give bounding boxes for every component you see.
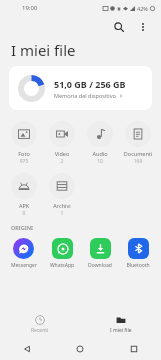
- button[interactable]: Messenger: [4, 236, 43, 271]
- button[interactable]: Video: [43, 118, 81, 168]
- button[interactable]: Recenti: [107, 338, 161, 360]
- staticText: Memoria del dispositivo: [54, 92, 116, 99]
- staticText: Bluetooth: [121, 262, 155, 269]
- staticText: 2: [47, 158, 77, 165]
- staticText: I miei file: [110, 327, 132, 334]
- staticText: Audio: [85, 150, 115, 157]
- staticText: I miei file: [11, 40, 76, 60]
- staticText: 19:00: [22, 4, 38, 12]
- button[interactable]: Foto: [4, 118, 43, 168]
- button[interactable]: Download: [81, 236, 119, 271]
- button[interactable]: Bluetooth: [119, 236, 157, 271]
- staticText: Recenti: [31, 327, 49, 334]
- staticText: 0: [9, 210, 39, 217]
- staticText: 1: [47, 210, 77, 217]
- button[interactable]: APK: [4, 170, 43, 220]
- staticText: 42%: [137, 5, 148, 12]
- button[interactable]: Altre opzioni: [133, 17, 153, 37]
- staticText: Download: [83, 262, 117, 269]
- button[interactable]: I miei file: [80, 310, 161, 338]
- staticText: APK: [9, 202, 39, 209]
- button[interactable]: Recenti: [0, 310, 80, 338]
- staticText: Documenti: [123, 150, 153, 157]
- staticText: 10: [85, 158, 115, 165]
- staticText: ORIGINI: [11, 224, 33, 231]
- staticText: 51,0 GB / 256 GB: [54, 78, 126, 90]
- staticText: Archivi: [47, 202, 77, 209]
- button[interactable]: Audio: [81, 118, 119, 168]
- staticText: WhatsApp: [45, 262, 79, 269]
- staticText: Foto: [9, 150, 39, 157]
- button[interactable]: 51,0 GB / 256 GB: [9, 66, 152, 110]
- staticText: Video: [47, 150, 77, 157]
- staticText: 169: [123, 158, 153, 165]
- button[interactable]: Documenti: [119, 118, 157, 168]
- button[interactable]: Archivi: [43, 170, 81, 220]
- staticText: 975: [9, 158, 39, 165]
- button[interactable]: Cerca: [109, 17, 129, 37]
- button[interactable]: Indietro: [0, 338, 53, 360]
- staticText: Messenger: [7, 262, 41, 269]
- button[interactable]: Home: [53, 338, 107, 360]
- button[interactable]: WhatsApp: [43, 236, 81, 271]
